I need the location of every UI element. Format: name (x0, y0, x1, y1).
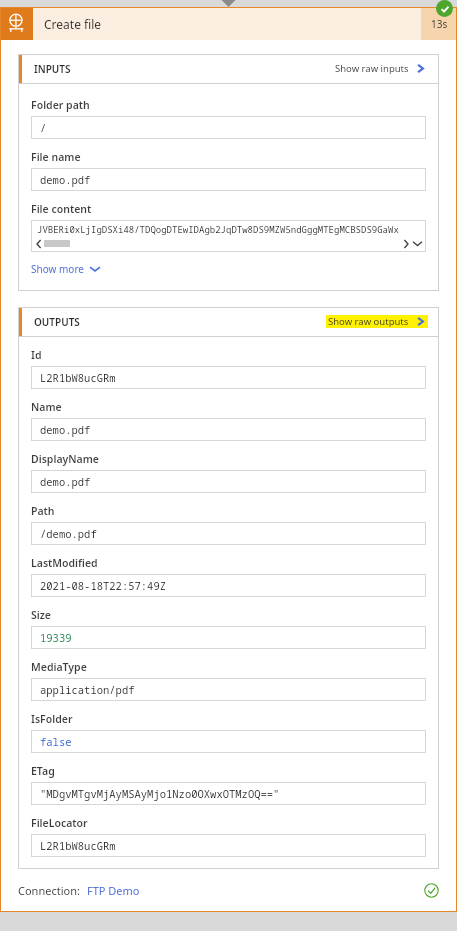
staticText: Path (31, 504, 55, 518)
button[interactable]: Show raw inputs (333, 62, 428, 75)
staticText: File name (31, 150, 81, 164)
staticText: OUTPUTS (34, 315, 80, 329)
staticText: Show raw outputs (328, 315, 409, 328)
button[interactable]: demo.pdf (31, 470, 426, 493)
staticText: FileLocator (31, 816, 88, 830)
staticText: Name (31, 400, 62, 414)
staticText: "MDgvMTgvMjAyMSAyMjo1Nzo0OXwxOTMzOQ==" (40, 787, 280, 801)
button[interactable]: Show more (31, 262, 100, 276)
staticText: Size (31, 608, 51, 622)
button[interactable]: false (31, 730, 426, 753)
staticText: 13s (431, 17, 448, 31)
button[interactable]: /demo.pdf (31, 522, 426, 545)
button[interactable]: 19339 (31, 626, 426, 649)
button[interactable]: demo.pdf (31, 168, 426, 191)
staticText: /demo.pdf (40, 527, 97, 541)
staticText: INPUTS (34, 62, 71, 76)
staticText: File content (31, 202, 92, 216)
button[interactable]: / (31, 116, 426, 139)
button[interactable]: OUTPUTS (18, 307, 439, 336)
staticText: FTP Demo (87, 883, 140, 898)
staticText: ETag (31, 764, 55, 778)
button[interactable]: L2R1bW8ucGRm (31, 366, 426, 389)
staticText: application/pdf (40, 683, 135, 697)
staticText: Show raw inputs (335, 62, 409, 75)
button[interactable]: Show raw outputs (326, 315, 428, 328)
staticText: Show more (31, 262, 84, 276)
staticText: Folder path (31, 98, 90, 112)
staticText: false (40, 735, 72, 749)
other: Succeeded (424, 883, 439, 898)
staticText: demo.pdf (40, 173, 91, 187)
staticText: 2021-08-18T22:57:49Z (40, 579, 166, 593)
button[interactable]: demo.pdf (31, 418, 426, 441)
staticText: Create file (44, 16, 102, 32)
button[interactable]: INPUTS (18, 54, 439, 83)
staticText: IsFolder (31, 712, 73, 726)
button[interactable]: "MDgvMTgvMjAyMSAyMjo1Nzo0OXwxOTMzOQ==" (31, 782, 426, 805)
button[interactable]: FTP connector (0, 7, 457, 40)
staticText: LastModified (31, 556, 98, 570)
staticText: 19339 (40, 631, 72, 645)
staticText: DisplayName (31, 452, 99, 466)
staticText: Id (31, 348, 42, 362)
button[interactable]: JVBERi0xLjIgDSXi48/TDQogDTEwIDAgb2JqDTw8… (31, 220, 426, 252)
staticText: JVBERi0xLjIgDSXi48/TDQogDTEwIDAgb2JqDTw8… (37, 223, 399, 235)
other: FTP connector (0, 7, 33, 40)
staticText: L2R1bW8ucGRm (40, 839, 116, 853)
other: Action succeeded (436, 0, 453, 17)
button[interactable]: Connection: (18, 883, 439, 898)
button[interactable]: 2021-08-18T22:57:49Z (31, 574, 426, 597)
staticText: demo.pdf (40, 475, 91, 489)
staticText: L2R1bW8ucGRm (40, 371, 116, 385)
staticText: MediaType (31, 660, 87, 674)
button[interactable]: application/pdf (31, 678, 426, 701)
button[interactable]: L2R1bW8ucGRm (31, 834, 426, 857)
staticText: demo.pdf (40, 423, 91, 437)
staticText: Connection: (18, 883, 80, 898)
staticText: / (40, 121, 47, 135)
